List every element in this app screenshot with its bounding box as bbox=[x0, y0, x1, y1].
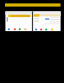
button[interactable]: Preview bbox=[0, 0, 64, 83]
